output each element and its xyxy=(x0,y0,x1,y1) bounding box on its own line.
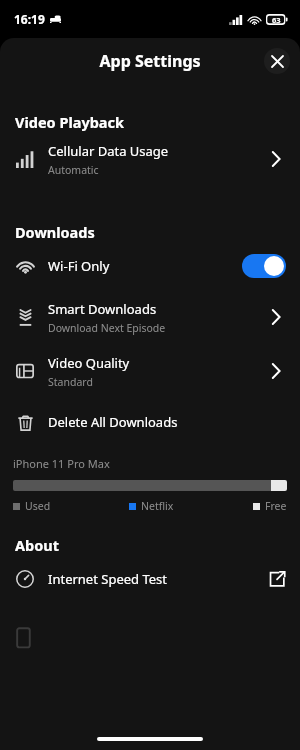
button[interactable]: Video Quality xyxy=(0,344,300,398)
staticText: Free xyxy=(265,499,287,513)
button[interactable]: Wi-Fi Only xyxy=(0,242,300,290)
staticText: Standard xyxy=(48,375,93,389)
button[interactable]: Smart Downloads xyxy=(0,290,300,344)
staticText: Cellular Data Usage xyxy=(48,142,169,160)
staticText: Video Playback xyxy=(15,112,125,132)
staticText: App Settings xyxy=(99,50,201,72)
staticText: Used xyxy=(25,499,51,513)
button[interactable]: Close xyxy=(264,48,290,74)
button[interactable]: Wi-Fi Only toggle xyxy=(242,254,286,278)
staticText: Automatic xyxy=(48,163,99,177)
staticText: Downloads xyxy=(15,222,95,242)
staticText: 16:19 xyxy=(14,11,45,27)
staticText: About xyxy=(15,535,59,555)
staticText: Delete All Downloads xyxy=(48,413,178,431)
button[interactable]: Delete All Downloads xyxy=(0,398,300,446)
staticText: iPhone 11 Pro Max xyxy=(13,456,110,471)
button[interactable]: Internet Speed Test xyxy=(0,555,300,603)
staticText: Internet Speed Test xyxy=(48,570,168,588)
staticText: Wi-Fi Only xyxy=(48,257,110,275)
staticText: Video Quality xyxy=(48,354,130,372)
button[interactable]: Cellular Data Usage xyxy=(0,132,300,186)
staticText: 63 xyxy=(272,15,281,25)
button[interactable]: Open Internet Speed Test xyxy=(268,570,286,588)
staticText: Netflix xyxy=(141,499,174,513)
staticText: Smart Downloads xyxy=(48,300,157,318)
staticText: Download Next Episode xyxy=(48,321,166,335)
